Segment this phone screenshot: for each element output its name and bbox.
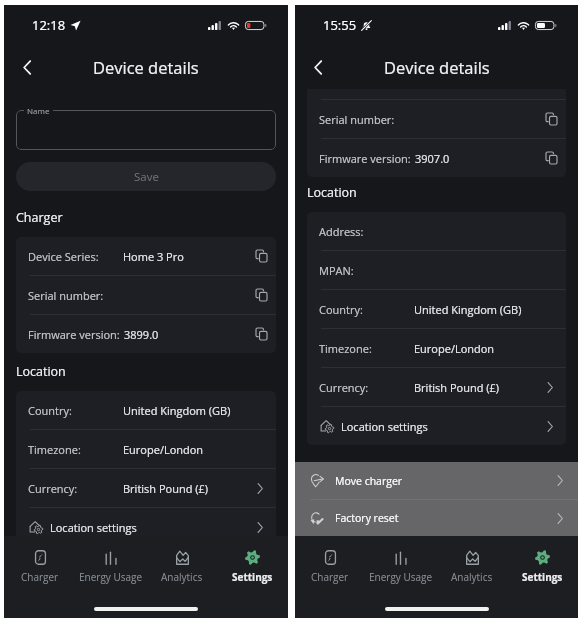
button[interactable]: Copy Serial number: xyxy=(536,100,566,138)
button[interactable]: Location settings xyxy=(16,508,276,536)
button[interactable]: Energy Usage xyxy=(365,536,436,590)
staticText: British Pound (£) xyxy=(123,481,209,496)
staticText: 15:55 xyxy=(323,16,357,34)
staticText: Settings xyxy=(522,570,563,584)
button[interactable]: Timezone: xyxy=(307,329,566,367)
staticText: Energy Usage xyxy=(369,570,433,584)
staticText: Analytics xyxy=(451,570,493,584)
staticText: Firmware version: xyxy=(319,151,411,166)
button[interactable]: Address: xyxy=(307,212,566,250)
staticText: Currency: xyxy=(28,481,78,496)
button[interactable]: Copy Device Series: xyxy=(246,237,276,275)
button[interactable]: Settings xyxy=(507,536,578,590)
button[interactable]: Charger xyxy=(295,536,365,590)
button[interactable]: Currency: xyxy=(16,469,276,507)
staticText: Serial number: xyxy=(28,288,104,303)
button[interactable]: Back xyxy=(305,54,331,80)
staticText: Europe/London xyxy=(123,442,204,457)
button[interactable]: Country: xyxy=(307,290,566,328)
button[interactable]: Device Series: xyxy=(16,237,276,275)
button[interactable]: Move charger xyxy=(295,462,578,499)
staticText: Move charger xyxy=(335,474,403,488)
button[interactable]: Factory reset xyxy=(295,500,578,536)
staticText: Location settings xyxy=(50,520,137,535)
staticText: Settings xyxy=(232,570,273,584)
staticText: Country: xyxy=(28,403,72,418)
staticText: Save xyxy=(134,169,159,185)
button[interactable]: Country: xyxy=(16,391,276,429)
staticText: Currency: xyxy=(319,380,369,395)
button[interactable]: Back xyxy=(14,54,40,80)
button[interactable]: Analytics xyxy=(436,536,507,590)
staticText: United Kingdom (GB) xyxy=(414,302,522,317)
staticText: Charger xyxy=(16,209,63,226)
staticText: Location xyxy=(16,363,66,380)
staticText: Home 3 Pro xyxy=(123,249,184,264)
staticText: Timezone: xyxy=(28,442,81,457)
staticText: Address: xyxy=(319,224,364,239)
staticText: Location settings xyxy=(341,419,428,434)
staticText: 3899.0 xyxy=(124,327,159,342)
button[interactable]: Copy Firmware version: xyxy=(536,139,566,177)
button[interactable]: Firmware version: xyxy=(307,139,566,177)
staticText: Factory reset xyxy=(335,511,399,525)
staticText: Device details xyxy=(384,56,490,78)
button[interactable]: Location settings xyxy=(307,407,566,445)
staticText: Charger xyxy=(311,570,349,584)
button[interactable]: Serial number: xyxy=(16,276,276,314)
staticText: Device Series: xyxy=(28,249,99,264)
button[interactable]: Firmware version: xyxy=(16,315,276,353)
staticText: Analytics xyxy=(161,570,203,584)
staticText: Timezone: xyxy=(319,341,372,356)
staticText: Country: xyxy=(319,302,363,317)
button[interactable]: MPAN: xyxy=(307,251,566,289)
button[interactable]: Energy Usage xyxy=(75,536,146,590)
staticText: 3907.0 xyxy=(415,151,450,166)
button[interactable]: Settings xyxy=(217,536,288,590)
staticText: Firmware version: xyxy=(28,327,120,342)
button[interactable]: Timezone: xyxy=(16,430,276,468)
staticText: Location xyxy=(307,184,357,201)
staticText: Charger xyxy=(21,570,59,584)
staticText: Europe/London xyxy=(414,341,495,356)
staticText: MPAN: xyxy=(319,263,354,278)
button[interactable]: Copy Serial number: xyxy=(246,276,276,314)
staticText: 12:18 xyxy=(32,16,66,34)
staticText: British Pound (£) xyxy=(414,380,500,395)
staticText: Name xyxy=(27,105,50,116)
button[interactable] xyxy=(16,110,276,150)
staticText: United Kingdom (GB) xyxy=(123,403,231,418)
button[interactable]: Currency: xyxy=(307,368,566,406)
staticText: Energy Usage xyxy=(79,570,143,584)
button[interactable]: Analytics xyxy=(146,536,217,590)
button[interactable]: Serial number: xyxy=(307,100,566,138)
staticText: Device details xyxy=(93,56,199,78)
staticText: Serial number: xyxy=(319,112,395,127)
button[interactable]: Charger xyxy=(4,536,75,590)
button[interactable]: Copy Firmware version: xyxy=(246,315,276,353)
button[interactable]: Save xyxy=(16,162,276,191)
